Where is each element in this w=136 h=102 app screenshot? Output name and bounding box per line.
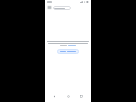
button[interactable]: Open navigation menu — [47, 5, 52, 10]
button[interactable]: Learn more — [60, 45, 76, 46]
button[interactable] — [53, 6, 71, 10]
button[interactable]: Recent apps — [77, 92, 86, 101]
button[interactable]: Home — [64, 92, 73, 101]
button[interactable] — [57, 49, 79, 54]
button[interactable]: Back — [50, 92, 59, 101]
